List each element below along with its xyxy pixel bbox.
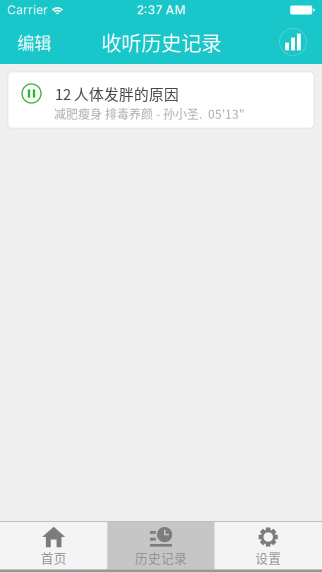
button[interactable]: 设置 — [215, 522, 322, 569]
button[interactable]: 编辑 — [0, 20, 64, 64]
staticText: Carrier — [7, 3, 48, 17]
button[interactable]: 首页 — [0, 522, 107, 569]
staticText: 历史记录 — [135, 548, 187, 567]
staticText: 2:37 AM — [136, 3, 185, 17]
button[interactable]: 12 人体发胖的原因 — [8, 72, 314, 128]
staticText: 收听历史记录 — [101, 27, 221, 57]
staticText: 12 人体发胖的原因 — [55, 83, 179, 104]
button[interactable]: 统计 — [271, 20, 315, 64]
button[interactable]: 历史记录 — [107, 522, 215, 569]
staticText: 首页 — [41, 548, 67, 567]
staticText: 减肥瘦身 排毒养颜 - 孙小圣. 05'13" — [54, 105, 245, 122]
staticText: 编辑 — [17, 29, 51, 55]
staticText: 设置 — [255, 548, 281, 567]
